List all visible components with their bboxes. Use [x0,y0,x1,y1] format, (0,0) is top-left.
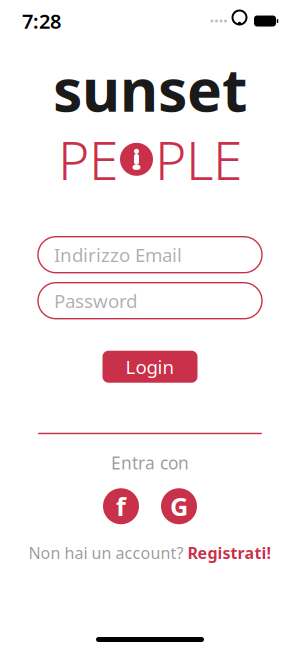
staticText: Registrati! [187,542,271,563]
staticText: Non hai un account? [28,542,183,563]
staticText: Login [125,354,174,379]
staticText: Password [54,288,137,313]
button[interactable]: Accedi con Facebook [103,488,139,524]
button[interactable]: Non hai un account? [28,542,271,563]
staticText: sunset [53,50,247,128]
button[interactable]: Login [102,351,197,383]
button[interactable]: Indirizzo Email [38,237,262,273]
button[interactable]: Accedi con Google [161,488,197,524]
staticText: 7:28 [22,8,61,34]
staticText: f [116,489,126,523]
staticText: Indirizzo Email [54,242,182,267]
staticText: G [170,489,188,523]
staticText: PE [58,124,118,195]
button[interactable]: Password [38,283,262,319]
staticText: Entra con [111,451,189,474]
staticText: PLE [155,124,242,195]
